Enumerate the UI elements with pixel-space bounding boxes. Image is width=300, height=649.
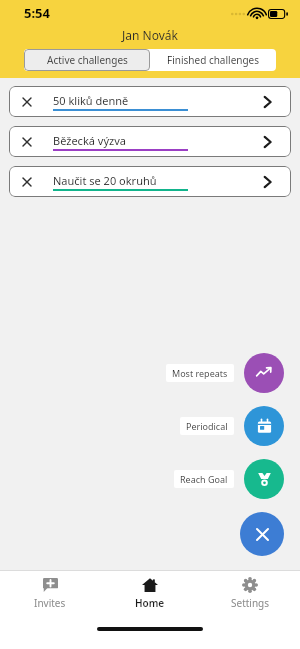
button[interactable]: Open challenge detail <box>257 172 277 192</box>
button[interactable]: Most repeats <box>172 367 228 379</box>
button[interactable]: Remove challenge <box>9 166 291 197</box>
button[interactable]: Open challenge detail <box>257 132 277 152</box>
staticText: Jan Novák <box>122 27 178 43</box>
staticText: Invites <box>34 596 66 610</box>
button[interactable]: Remove challenge <box>9 86 291 117</box>
button[interactable]: Close menu <box>240 512 284 556</box>
staticText: Reach Goal <box>180 473 228 485</box>
staticText: Periodical <box>186 420 228 432</box>
button[interactable]: Reach Goal <box>180 473 228 485</box>
button[interactable]: Invites <box>0 571 100 617</box>
button[interactable]: Most repeats <box>244 353 284 393</box>
staticText: Finished challenges <box>167 53 260 67</box>
staticText: 50 kliků denně <box>53 93 129 108</box>
staticText: Běžecká výzva <box>53 133 126 148</box>
button[interactable]: Remove challenge <box>18 133 36 151</box>
button[interactable]: Home <box>100 571 200 617</box>
button[interactable]: Settings <box>200 571 300 617</box>
staticText: Active challenges <box>47 53 128 67</box>
button[interactable]: Reach Goal <box>244 459 284 499</box>
button[interactable]: Periodical <box>244 406 284 446</box>
staticText: Home <box>135 596 165 610</box>
staticText: 5:54 <box>24 4 50 22</box>
staticText: Naučit se 20 okruhů <box>53 173 157 188</box>
button[interactable]: Remove challenge <box>18 173 36 191</box>
button[interactable]: Active challenges <box>24 49 150 71</box>
button[interactable]: Remove challenge <box>18 93 36 111</box>
button[interactable]: Periodical <box>186 420 228 432</box>
button[interactable]: Remove challenge <box>9 126 291 157</box>
button[interactable]: Open challenge detail <box>257 92 277 112</box>
staticText: Settings <box>231 596 270 610</box>
staticText: Most repeats <box>172 367 228 379</box>
button[interactable]: Finished challenges <box>150 49 276 71</box>
